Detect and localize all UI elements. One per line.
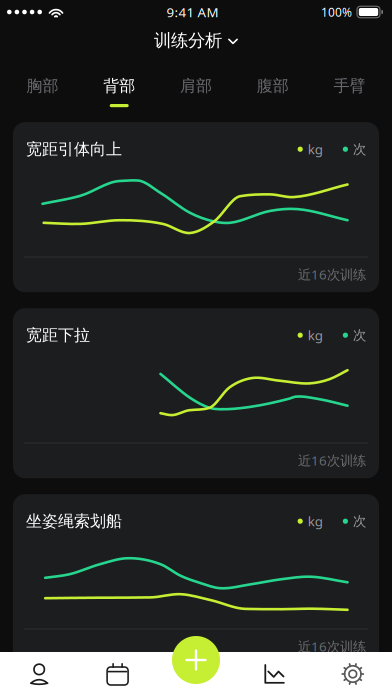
staticText: 训练分析 bbox=[154, 30, 222, 51]
button[interactable]: 背部 bbox=[81, 57, 158, 118]
staticText: 宽距下拉 bbox=[26, 325, 90, 345]
staticText: kg bbox=[308, 512, 323, 530]
staticText: 手臂 bbox=[334, 76, 366, 96]
staticText: kg bbox=[308, 326, 323, 344]
button[interactable]: Statistics bbox=[235, 652, 314, 696]
staticText: 次 bbox=[353, 327, 366, 343]
button[interactable]: 手臂 bbox=[311, 57, 388, 118]
staticText: kg bbox=[308, 140, 323, 158]
staticText: 100% bbox=[321, 4, 352, 20]
staticText: 宽距引体向上 bbox=[26, 139, 122, 159]
button[interactable]: Profile bbox=[0, 652, 78, 696]
staticText: 腹部 bbox=[257, 76, 289, 96]
button[interactable]: 肩部 bbox=[158, 57, 234, 118]
button[interactable]: Settings bbox=[314, 652, 392, 696]
button[interactable]: 坐姿绳索划船 bbox=[13, 494, 379, 664]
staticText: 近16次训练 bbox=[298, 637, 366, 655]
staticText: 肩部 bbox=[180, 76, 212, 96]
staticText: 坐姿绳索划船 bbox=[26, 511, 122, 531]
button[interactable]: 宽距引体向上 bbox=[13, 122, 379, 292]
button[interactable]: Add workout bbox=[172, 636, 220, 684]
staticText: 近16次训练 bbox=[298, 265, 366, 283]
button[interactable]: 宽距下拉 bbox=[13, 308, 379, 478]
button[interactable]: 训练分析 bbox=[0, 24, 392, 57]
button[interactable]: 腹部 bbox=[234, 57, 311, 118]
staticText: 胸部 bbox=[26, 76, 58, 96]
staticText: 次 bbox=[353, 141, 366, 157]
button[interactable]: 胸部 bbox=[4, 57, 81, 118]
staticText: 次 bbox=[353, 513, 366, 529]
button[interactable]: Calendar bbox=[78, 652, 157, 696]
staticText: 背部 bbox=[103, 76, 135, 96]
staticText: 近16次训练 bbox=[298, 451, 366, 469]
staticText: 9:41 AM bbox=[166, 3, 218, 21]
